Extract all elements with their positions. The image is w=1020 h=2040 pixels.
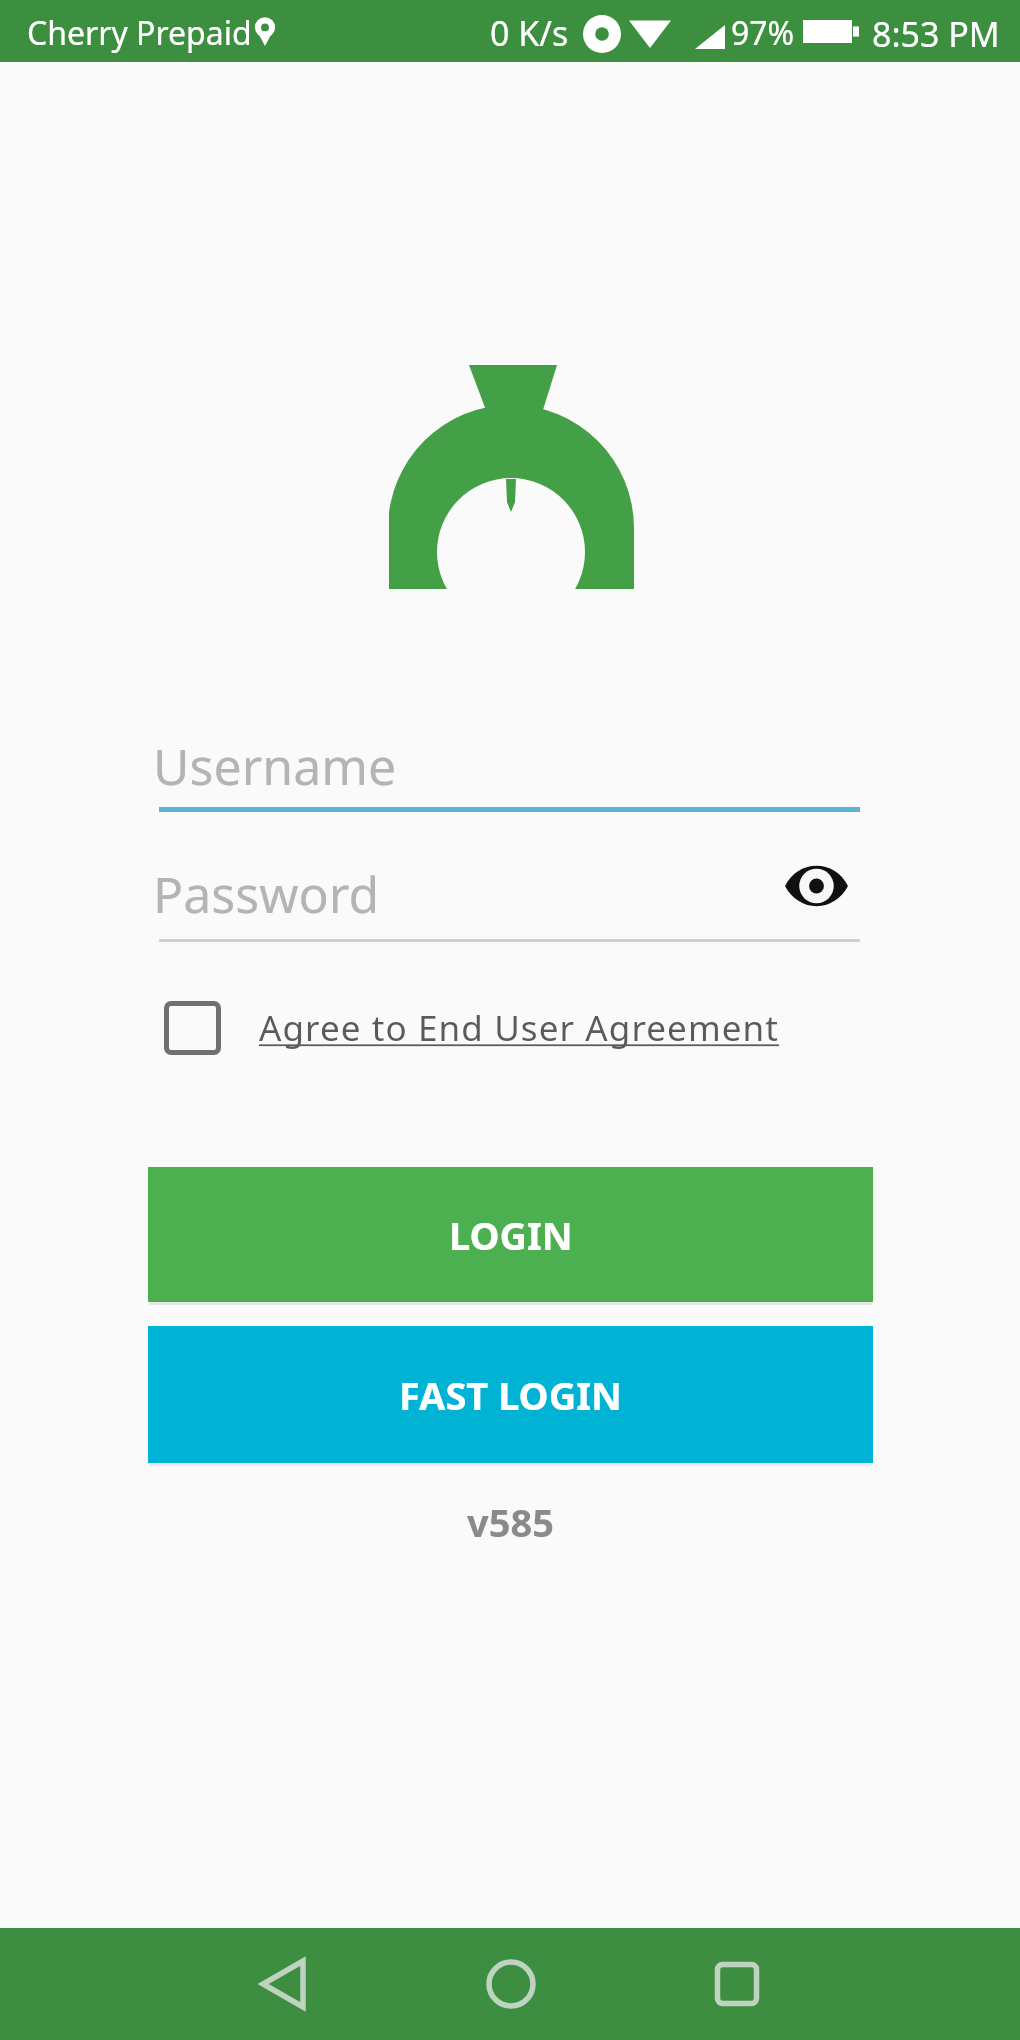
staticText: 8:53 PM (872, 11, 1000, 57)
staticText: 97% (731, 11, 795, 55)
staticText: FAST LOGIN (399, 1369, 622, 1421)
staticText: Cherry Prepaid (27, 11, 252, 55)
button[interactable]: Agree to End User Agreement (164, 1000, 780, 1056)
button[interactable]: LOGIN (148, 1167, 873, 1302)
button[interactable]: Back (227, 1928, 339, 2040)
button[interactable]: FAST LOGIN (148, 1326, 873, 1463)
staticText: Password (153, 860, 380, 928)
staticText: Agree to End User Agreement (259, 1004, 780, 1052)
staticText: v585 (467, 1496, 554, 1548)
button[interactable]: Recents (681, 1928, 793, 2040)
button[interactable]: Show password (779, 849, 853, 923)
staticText: Username (153, 732, 397, 800)
staticText: 0 K/s (490, 10, 569, 56)
button[interactable]: Home (455, 1928, 567, 2040)
staticText: LOGIN (449, 1209, 573, 1261)
